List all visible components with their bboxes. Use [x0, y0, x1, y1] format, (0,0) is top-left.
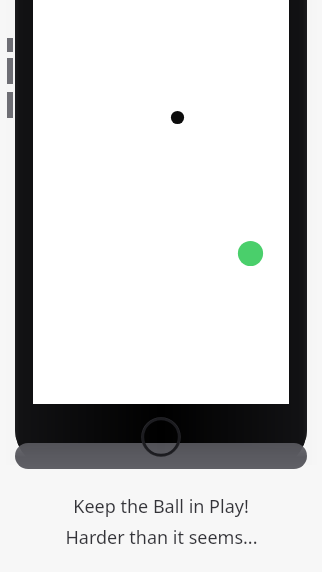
staticText: Keep the Ball in Play!	[73, 494, 249, 519]
button[interactable]: Game area, tap to play	[33, 0, 289, 404]
staticText: Harder than it seems...	[65, 525, 258, 550]
button[interactable]: Home	[141, 417, 181, 457]
